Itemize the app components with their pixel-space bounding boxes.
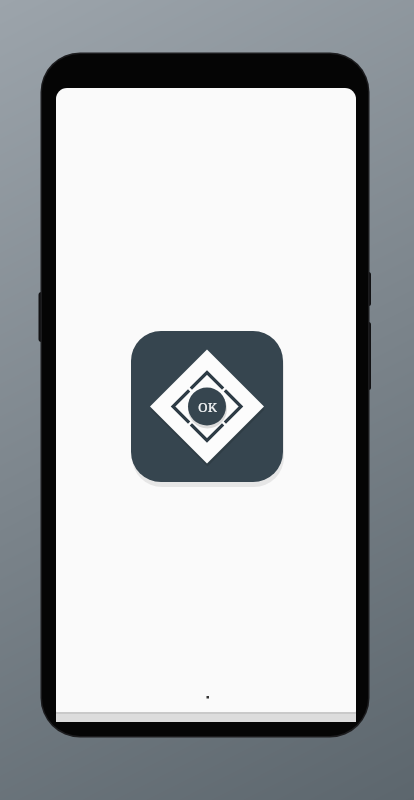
- button[interactable]: Remote control D-pad with OK button: [131, 331, 283, 482]
- staticText: OK: [198, 398, 217, 416]
